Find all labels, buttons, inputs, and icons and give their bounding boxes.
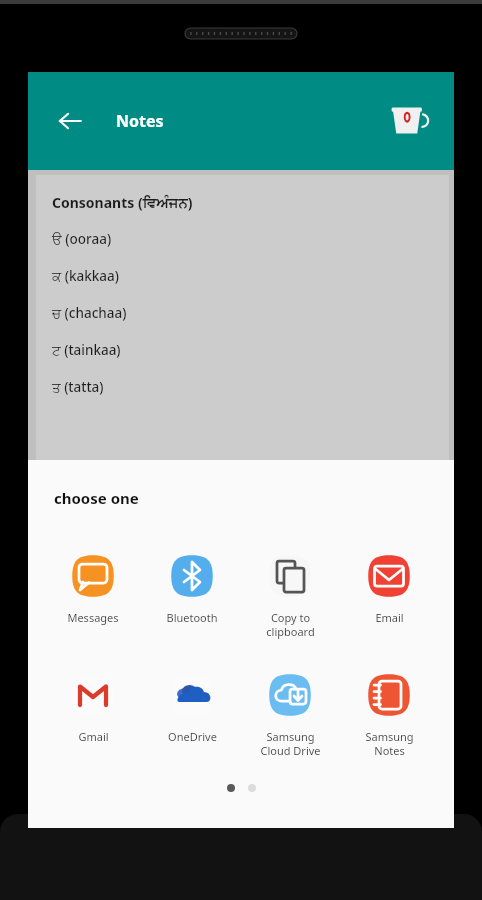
staticText: Samsung Cloud Drive [260,729,321,758]
button[interactable]: Email [343,548,435,625]
button[interactable]: Bluetooth [146,548,238,625]
button[interactable]: Gmail [47,667,139,744]
staticText: Samsung Notes [365,729,414,758]
button[interactable]: Back [46,97,94,145]
staticText: Notes [116,110,164,132]
staticText: Copy to clipboard [266,610,315,639]
staticText: ਕ (kakkaa) [52,267,119,285]
button[interactable]: Samsung Notes [343,667,435,758]
staticText: Email [375,610,404,625]
button[interactable]: OneDrive [146,667,238,744]
staticText: choose one [54,488,139,508]
button[interactable]: Trash [382,95,434,147]
staticText: ਟ (tainkaa) [52,341,121,359]
staticText: Messages [67,610,119,625]
staticText: OneDrive [168,729,217,744]
staticText: ੳ (ooraa) [52,230,112,248]
staticText: Consonants (ਵਿਅੰਜਨ) [52,193,193,212]
staticText: ਤ (tatta) [52,378,104,396]
staticText: ਚ (chachaa) [52,304,127,322]
staticText: Gmail [78,729,109,744]
button[interactable]: Samsung Cloud Drive [244,667,336,758]
button[interactable]: Messages [47,548,139,625]
button[interactable]: Copy to clipboard [244,548,336,639]
staticText: Bluetooth [166,610,218,625]
